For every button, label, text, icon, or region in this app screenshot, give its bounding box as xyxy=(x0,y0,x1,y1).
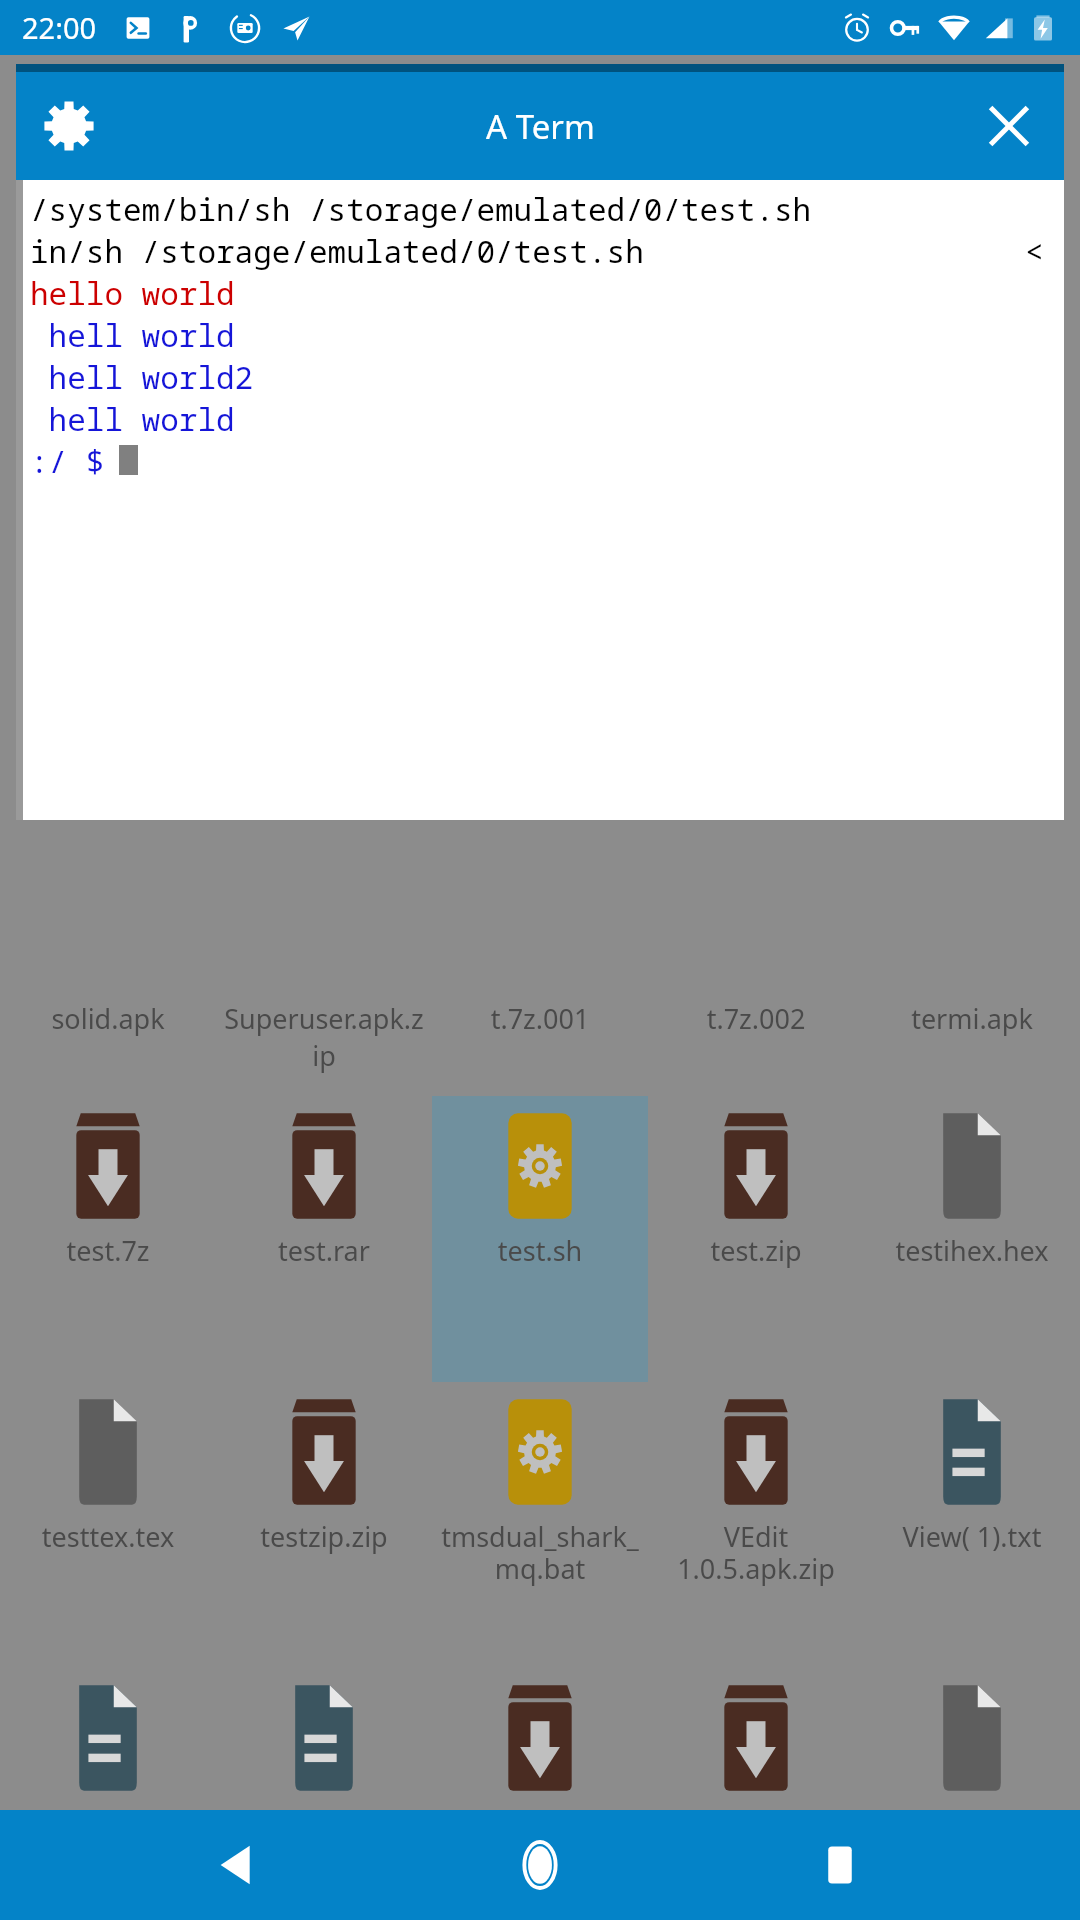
staticText: winkawaks.exe xyxy=(868,1804,1076,1841)
button[interactable]: View2.cpp xyxy=(216,1668,432,1920)
staticText: solid.apk xyxy=(6,1000,210,1037)
button[interactable]: termi.apk xyxy=(870,1000,1074,1037)
button[interactable]: Back xyxy=(180,1810,300,1920)
staticText: VEdit 1.0.5.apk.zip xyxy=(652,1518,860,1587)
staticText: test.sh xyxy=(436,1232,644,1269)
button[interactable]: testihex.hex xyxy=(864,1096,1080,1382)
staticText: VirtualBox-6.0-6.0.8_1… xyxy=(436,1804,644,1873)
staticText: View2.cpp xyxy=(220,1804,428,1841)
button[interactable]: VEdit 1.0.5.apk.zip xyxy=(648,1382,864,1668)
staticText: A Term xyxy=(486,104,595,149)
button[interactable]: solid.apk xyxy=(6,1000,210,1037)
button[interactable]: tmsdual_shark_mq.bat xyxy=(432,1382,648,1668)
staticText: View( 1).txt xyxy=(868,1518,1076,1555)
button[interactable]: View.cpp xyxy=(0,1668,216,1920)
staticText: VirtualBox-6.0-6.0.8_1… xyxy=(652,1804,860,1873)
staticText: < xyxy=(1025,230,1044,272)
button[interactable]: test.zip xyxy=(648,1096,864,1382)
button[interactable]: t.7z.002 xyxy=(654,1000,858,1037)
staticText: test.rar xyxy=(220,1232,428,1269)
button[interactable]: test.rar xyxy=(216,1096,432,1382)
button[interactable]: Close xyxy=(970,87,1048,165)
button[interactable]: VirtualBox-6.0-6.0.8_1… xyxy=(648,1668,864,1920)
staticText: test.7z xyxy=(4,1232,212,1269)
staticText: 22:00 xyxy=(22,8,97,47)
staticText: termi.apk xyxy=(870,1000,1074,1037)
staticText: hell world xyxy=(30,314,235,356)
button[interactable]: testzip.zip xyxy=(216,1382,432,1668)
button[interactable]: Home xyxy=(480,1810,600,1920)
button[interactable]: test.sh xyxy=(432,1096,648,1382)
staticText: testihex.hex xyxy=(868,1232,1076,1269)
staticText: View.cpp xyxy=(4,1804,212,1841)
button[interactable]: testtex.tex xyxy=(0,1382,216,1668)
staticText: testtex.tex xyxy=(4,1518,212,1555)
button[interactable]: t.7z.001 xyxy=(438,1000,642,1037)
staticText: testzip.zip xyxy=(220,1518,428,1555)
staticText: t.7z.002 xyxy=(654,1000,858,1037)
button[interactable]: winkawaks.exe xyxy=(864,1668,1080,1920)
button[interactable]: Recent apps xyxy=(780,1810,900,1920)
staticText: tmsdual_shark_mq.bat xyxy=(436,1518,644,1587)
button[interactable]: /system/bin/sh /storage/emulated/0/test.… xyxy=(16,180,1064,820)
staticText: Superuser.apk.zip xyxy=(222,1000,426,1074)
staticText: /system/bin/sh /storage/emulated/0/test.… xyxy=(30,188,812,230)
staticText: hell world xyxy=(30,398,235,440)
staticText: test.zip xyxy=(652,1232,860,1269)
button[interactable]: test.7z xyxy=(0,1096,216,1382)
staticText: t.7z.001 xyxy=(438,1000,642,1037)
button[interactable]: Settings xyxy=(30,87,108,165)
button[interactable]: VirtualBox-6.0-6.0.8_1… xyxy=(432,1668,648,1920)
staticText: in/sh /storage/emulated/0/test.sh xyxy=(30,230,644,272)
button[interactable]: View( 1).txt xyxy=(864,1382,1080,1668)
staticText: hello world xyxy=(30,272,235,314)
button[interactable]: Superuser.apk.zip xyxy=(222,1000,426,1074)
staticText: hell world2 xyxy=(30,356,254,398)
staticText: :/ $ xyxy=(30,440,105,482)
